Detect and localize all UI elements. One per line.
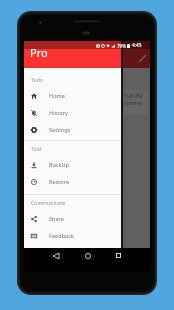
staticText: 5:45 PM — [124, 93, 143, 100]
staticText: History — [49, 109, 68, 117]
button[interactable]: Home — [82, 250, 93, 261]
button[interactable]: Home — [24, 87, 121, 104]
button[interactable] — [24, 41, 150, 248]
staticText: Home — [49, 92, 65, 100]
staticText: Share — [49, 215, 65, 223]
staticText: Todo — [31, 76, 43, 83]
staticText: 79% — [117, 43, 126, 49]
staticText: Tool — [31, 145, 42, 152]
button[interactable]: History — [24, 104, 121, 121]
button[interactable]: BackUp — [24, 156, 121, 173]
button[interactable]: Settings — [24, 121, 121, 138]
staticText: Feedback — [49, 232, 74, 240]
button[interactable]: Feedback — [24, 227, 121, 244]
staticText: by Johnny — [119, 100, 143, 107]
button[interactable]: Recents — [113, 250, 124, 261]
staticText: 4:45 — [132, 42, 142, 49]
staticText: Pro — [30, 45, 48, 60]
button[interactable]: Back — [50, 250, 61, 261]
button[interactable]: Restore — [24, 173, 121, 190]
button[interactable]: Edit — [135, 51, 149, 65]
staticText: BackUp — [49, 161, 69, 169]
button[interactable]: 5:45 PM — [30, 90, 148, 114]
button[interactable]: Share — [24, 210, 121, 227]
staticText: Settings — [49, 126, 71, 134]
staticText: Communicate — [31, 199, 66, 206]
staticText: Restore — [49, 178, 70, 186]
